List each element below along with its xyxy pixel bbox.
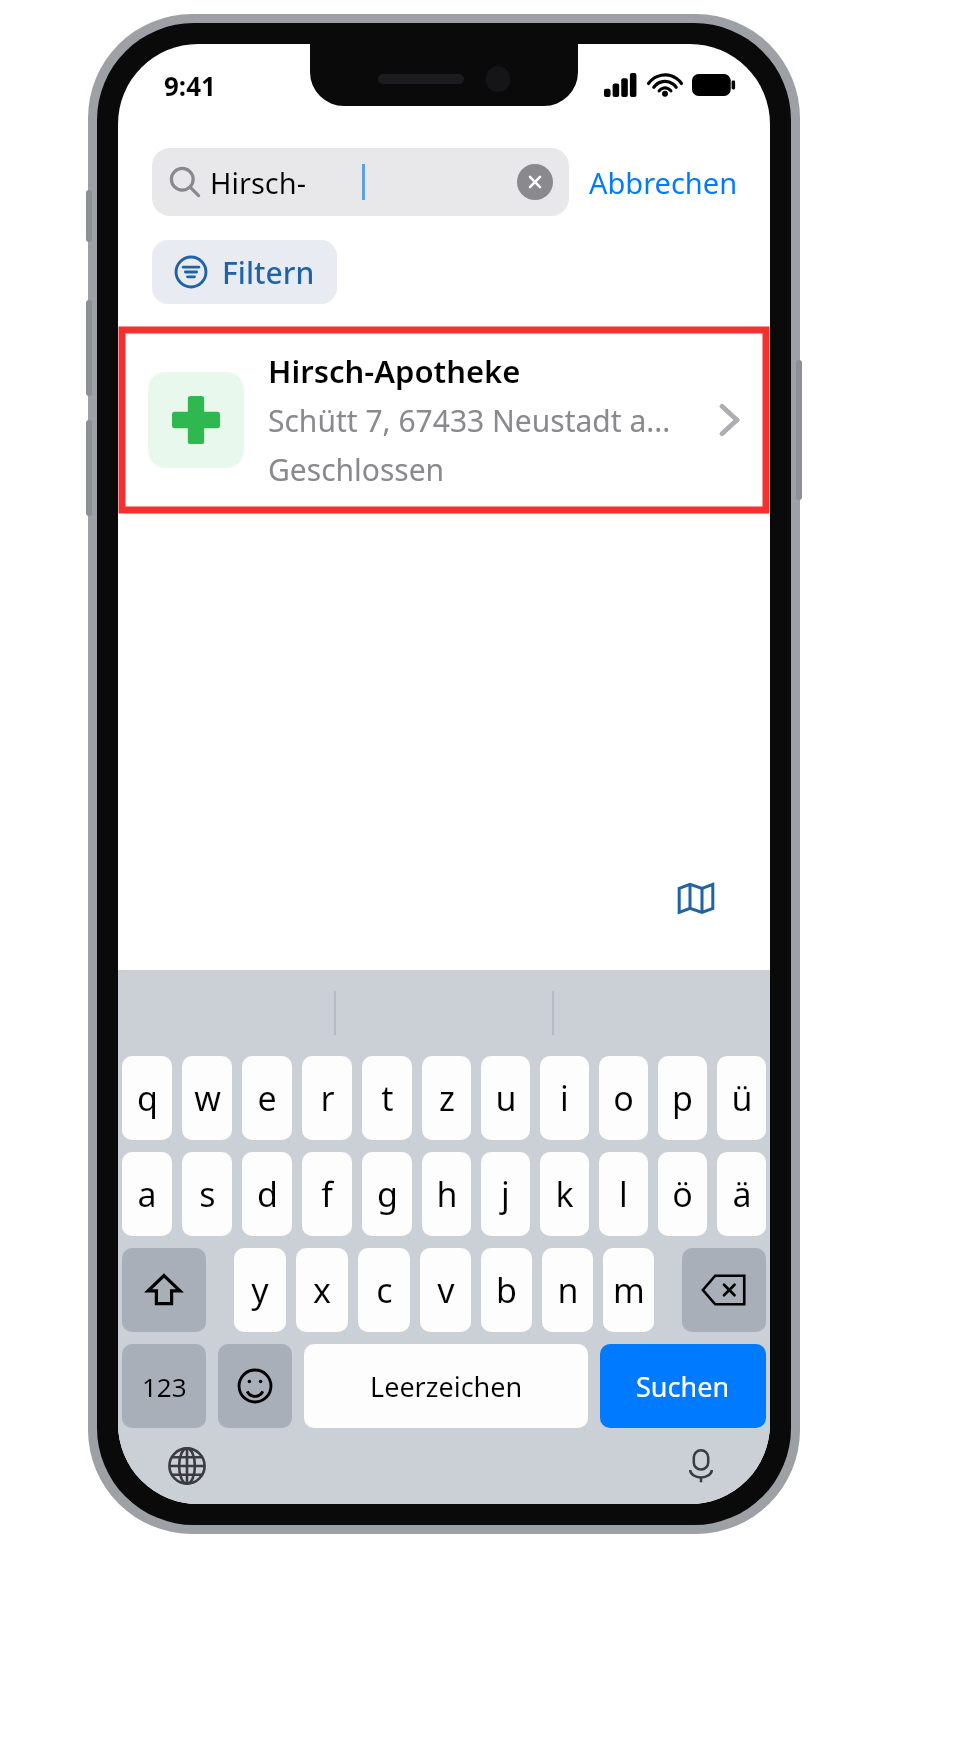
staticText: s bbox=[199, 1171, 216, 1217]
button[interactable]: s bbox=[182, 1152, 232, 1236]
staticText: b bbox=[496, 1267, 517, 1313]
button[interactable]: n bbox=[542, 1248, 593, 1332]
button[interactable]: Emoji bbox=[218, 1344, 292, 1428]
button[interactable]: l bbox=[599, 1152, 648, 1236]
button[interactable]: Löschen bbox=[682, 1248, 766, 1332]
button[interactable]: Abbrechen bbox=[587, 155, 740, 210]
staticText: Suchen bbox=[636, 1368, 730, 1405]
button[interactable]: ä bbox=[717, 1152, 766, 1236]
staticText: e bbox=[257, 1075, 277, 1121]
staticText: j bbox=[501, 1171, 510, 1217]
button[interactable]: y bbox=[234, 1248, 286, 1332]
staticText: u bbox=[495, 1075, 517, 1121]
button[interactable]: Filtern bbox=[152, 240, 337, 304]
button[interactable]: Text löschen bbox=[517, 164, 553, 200]
button[interactable]: Hirsch-Apotheke bbox=[122, 330, 766, 510]
button[interactable]: ö bbox=[658, 1152, 707, 1236]
staticText: r bbox=[320, 1075, 335, 1121]
button[interactable]: f bbox=[302, 1152, 352, 1236]
staticText: f bbox=[321, 1171, 333, 1217]
staticText: ö bbox=[672, 1171, 693, 1217]
staticText: Abbrechen bbox=[589, 163, 738, 202]
button[interactable]: Diktieren bbox=[678, 1443, 724, 1489]
button[interactable]: i bbox=[540, 1056, 589, 1140]
staticText: Leerzeichen bbox=[370, 1368, 523, 1405]
button[interactable]: ü bbox=[717, 1056, 766, 1140]
staticText: 9:41 bbox=[164, 68, 216, 103]
staticText: v bbox=[437, 1267, 455, 1313]
staticText: Hirsch-Apotheke bbox=[268, 350, 521, 392]
button[interactable]: p bbox=[658, 1056, 707, 1140]
button[interactable]: d bbox=[242, 1152, 292, 1236]
button[interactable]: 123 bbox=[122, 1344, 206, 1428]
button[interactable]: g bbox=[362, 1152, 412, 1236]
staticText: w bbox=[194, 1075, 221, 1121]
staticText: Schütt 7, 67433 Neustadt a... bbox=[268, 400, 671, 441]
staticText: ü bbox=[731, 1075, 753, 1121]
button[interactable]: Hirsch-Apotheke 67433 bbox=[152, 148, 569, 216]
staticText: p bbox=[672, 1075, 693, 1121]
button[interactable]: Suchen bbox=[600, 1344, 766, 1428]
button[interactable]: u bbox=[481, 1056, 530, 1140]
button[interactable]: Leerzeichen bbox=[304, 1344, 588, 1428]
staticText: a bbox=[137, 1171, 157, 1217]
staticText: y bbox=[251, 1267, 269, 1313]
staticText: Hirsch-Apotheke 67433 bbox=[210, 163, 362, 202]
staticText: i bbox=[560, 1075, 569, 1121]
button[interactable]: k bbox=[540, 1152, 589, 1236]
button[interactable]: j bbox=[481, 1152, 530, 1236]
button[interactable]: o bbox=[599, 1056, 648, 1140]
staticText: m bbox=[613, 1267, 645, 1313]
staticText: Filtern bbox=[222, 252, 315, 293]
button[interactable]: v bbox=[420, 1248, 471, 1332]
button[interactable]: z bbox=[422, 1056, 471, 1140]
button[interactable]: a bbox=[122, 1152, 172, 1236]
staticText: l bbox=[619, 1171, 628, 1217]
button[interactable]: e bbox=[242, 1056, 292, 1140]
button[interactable]: x bbox=[296, 1248, 348, 1332]
staticText: q bbox=[137, 1075, 158, 1121]
button[interactable]: Shift bbox=[122, 1248, 206, 1332]
button[interactable]: c bbox=[358, 1248, 410, 1332]
button[interactable]: r bbox=[302, 1056, 352, 1140]
button[interactable]: q bbox=[122, 1056, 172, 1140]
staticText: o bbox=[613, 1075, 634, 1121]
staticText: g bbox=[377, 1171, 398, 1217]
staticText: 123 bbox=[142, 1369, 187, 1404]
staticText: d bbox=[257, 1171, 278, 1217]
button[interactable]: m bbox=[603, 1248, 654, 1332]
staticText: z bbox=[439, 1075, 455, 1121]
staticText: h bbox=[436, 1171, 458, 1217]
button[interactable]: h bbox=[422, 1152, 471, 1236]
staticText: c bbox=[376, 1267, 393, 1313]
staticText: t bbox=[381, 1075, 394, 1121]
button[interactable]: t bbox=[362, 1056, 412, 1140]
staticText: Geschlossen bbox=[268, 449, 445, 490]
button[interactable]: Karte anzeigen bbox=[658, 860, 734, 936]
button[interactable]: w bbox=[182, 1056, 232, 1140]
button[interactable]: b bbox=[481, 1248, 532, 1332]
staticText: n bbox=[557, 1267, 579, 1313]
staticText: k bbox=[555, 1171, 574, 1217]
staticText: ä bbox=[732, 1171, 752, 1217]
staticText: x bbox=[313, 1267, 331, 1313]
button[interactable]: Tastatur wechseln bbox=[164, 1443, 210, 1489]
